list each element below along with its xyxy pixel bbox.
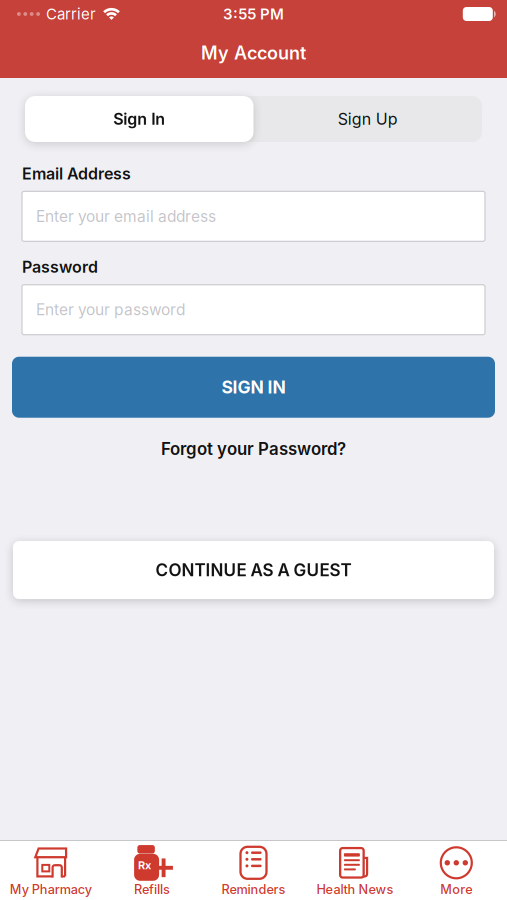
staticText: More [440,882,472,897]
staticText: 3:55 PM [223,5,284,23]
staticText: Health News [316,882,393,897]
button[interactable]: Forgot your Password? [161,439,346,459]
staticText: Enter your password [36,300,185,319]
staticText: Carrier [46,5,96,23]
staticText: Reminders [221,882,285,897]
button[interactable]: More [406,845,507,897]
button[interactable]: My Pharmacy [0,845,101,897]
staticText: My Account [201,42,306,64]
button[interactable]: Rx [101,845,203,897]
staticText: Enter your email address [36,207,216,226]
button[interactable]: Sign In [25,96,253,142]
staticText: Refills [134,882,170,897]
staticText: My Pharmacy [10,882,92,897]
staticText: Sign Up [338,109,398,129]
staticText: Password [22,257,98,277]
staticText: SIGN IN [221,377,285,398]
button[interactable]: Reminders [203,845,304,897]
button[interactable]: Password [0,285,507,335]
staticText: Email Address [22,164,131,183]
button[interactable]: SIGN IN [12,357,495,418]
button[interactable]: Email Address [0,191,507,241]
staticText: Rx [138,859,151,872]
button[interactable]: CONTINUE AS A GUEST [13,541,494,599]
staticText: Sign In [113,109,165,129]
button[interactable]: Health News [304,845,406,897]
staticText: CONTINUE AS A GUEST [155,560,351,580]
button[interactable]: Sign Up [253,96,482,142]
staticText: Forgot your Password? [161,439,346,459]
